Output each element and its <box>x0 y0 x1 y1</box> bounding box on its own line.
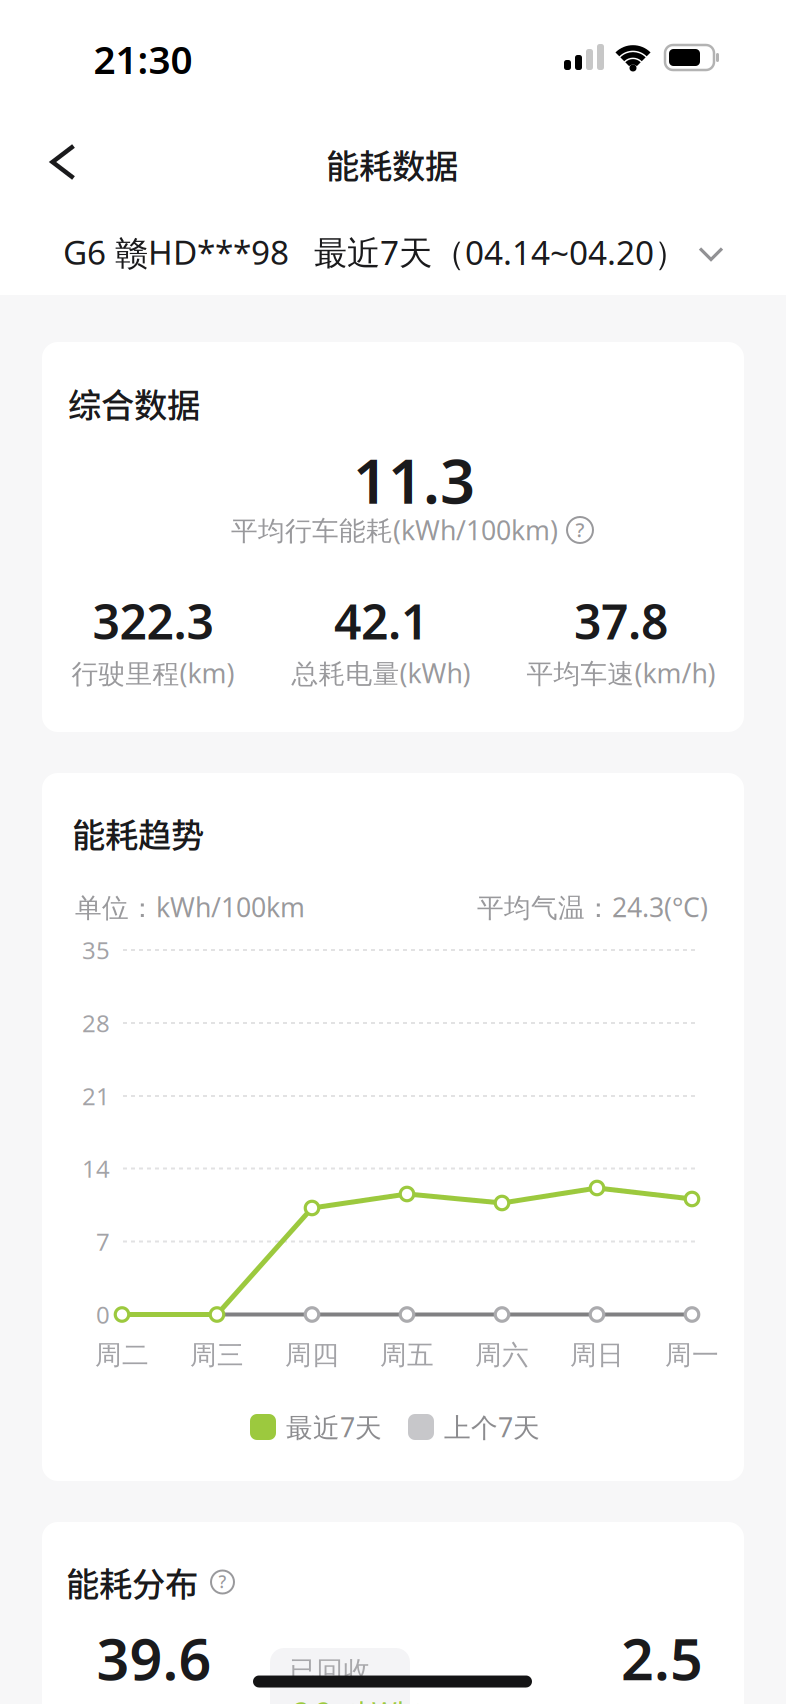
staticText: 11.3 <box>353 439 475 521</box>
staticText: 能耗分布 <box>66 1558 198 1606</box>
staticText: G6 赣HD***98 <box>63 230 289 274</box>
button[interactable]: 最近7天（04.14~04.20） <box>314 230 722 274</box>
staticText: 2.5 <box>621 1620 703 1696</box>
staticText: 行驶里程(km) <box>71 655 234 691</box>
staticText: 28 <box>82 1007 110 1039</box>
staticText: ? <box>575 516 584 543</box>
staticText: 周四 <box>285 1339 339 1371</box>
staticText: 能耗数据 <box>326 140 458 188</box>
staticText: 35 <box>82 934 110 966</box>
staticText: 综合数据 <box>68 379 200 427</box>
staticText: 周六 <box>475 1339 529 1371</box>
staticText: 7 <box>96 1226 110 1257</box>
staticText: 最近7天 <box>286 1409 382 1445</box>
staticText: 周五 <box>380 1339 434 1371</box>
staticText: 0 <box>96 1299 110 1330</box>
staticText: 已回收 <box>289 1655 370 1687</box>
staticText: 总耗电量(kWh) <box>291 655 470 691</box>
button[interactable]: Help <box>567 517 593 543</box>
staticText: ? <box>218 1570 226 1593</box>
staticText: 21:30 <box>93 33 192 85</box>
staticText: 322.3 <box>92 589 213 653</box>
button[interactable]: Back <box>38 132 87 192</box>
staticText: 单位：kWh/100km <box>75 889 305 925</box>
staticText: 最近7天（04.14~04.20） <box>314 230 687 274</box>
staticText: 平均车速(km/h) <box>526 655 715 691</box>
staticText: 周日 <box>570 1339 624 1371</box>
staticText: 3.2（kWh） <box>294 1694 440 1704</box>
staticText: 周二 <box>95 1339 149 1371</box>
staticText: 周一 <box>665 1339 719 1371</box>
staticText: 能耗趋势 <box>72 809 204 857</box>
staticText: 42.1 <box>334 589 428 653</box>
staticText: 39.6 <box>96 1620 211 1696</box>
staticText: 21 <box>82 1080 110 1112</box>
staticText: 37.8 <box>574 589 668 653</box>
staticText: 14 <box>82 1153 110 1184</box>
button[interactable]: Help <box>211 1570 234 1593</box>
staticText: 平均行车能耗(kWh/100km) <box>231 512 558 548</box>
staticText: 周三 <box>190 1339 244 1371</box>
staticText: 平均气温：24.3(°C) <box>477 889 708 925</box>
staticText: 上个7天 <box>444 1409 540 1445</box>
